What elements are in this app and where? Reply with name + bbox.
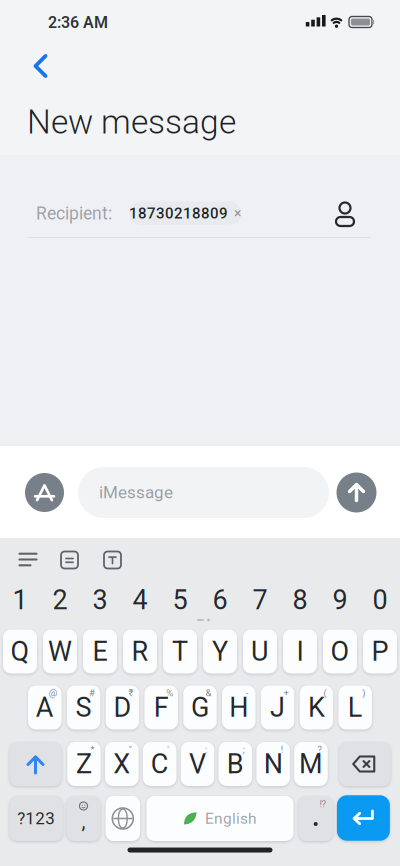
button[interactable]: N: [256, 742, 290, 786]
button[interactable]: 3: [80, 582, 120, 618]
staticText: !: [281, 744, 283, 755]
button[interactable]: R: [123, 629, 157, 673]
button[interactable]: G: [183, 685, 217, 729]
button[interactable]: C: [143, 742, 176, 786]
staticText: New message: [27, 102, 236, 142]
staticText: K: [308, 692, 325, 723]
button[interactable]: [25, 49, 55, 83]
staticText: 0: [372, 584, 387, 616]
button[interactable]: 18730218809: [129, 201, 241, 225]
button[interactable]: Q: [3, 629, 37, 673]
staticText: E: [92, 636, 107, 667]
staticText: ): [362, 687, 365, 698]
button[interactable]: L: [338, 685, 372, 729]
button[interactable]: E: [83, 629, 117, 673]
button[interactable]: English: [146, 796, 293, 841]
staticText: ;: [243, 744, 245, 755]
button[interactable]: [55, 547, 83, 573]
button[interactable]: Y: [203, 629, 237, 673]
button[interactable]: iMessage: [78, 467, 329, 518]
staticText: G: [191, 692, 209, 723]
staticText: S: [76, 692, 92, 723]
staticText: ': [167, 744, 169, 755]
staticText: W: [48, 636, 72, 667]
staticText: L: [348, 692, 363, 723]
button[interactable]: [339, 742, 390, 786]
staticText: 7: [252, 584, 267, 616]
staticText: ,: [81, 810, 85, 833]
button[interactable]: 8: [280, 582, 320, 618]
button[interactable]: S: [67, 685, 100, 729]
staticText: 3: [92, 584, 107, 616]
button[interactable]: 2: [40, 582, 80, 618]
staticText: Z: [76, 748, 92, 780]
button[interactable]: 4: [120, 582, 160, 618]
staticText: I: [296, 636, 303, 667]
staticText: B: [227, 748, 244, 780]
staticText: 1: [12, 584, 27, 616]
staticText: -: [246, 687, 249, 698]
staticText: F: [154, 692, 169, 723]
staticText: ?123: [17, 808, 55, 828]
button[interactable]: ?123: [10, 796, 63, 841]
staticText: 2:36 AM: [48, 13, 108, 32]
button[interactable]: T: [163, 629, 197, 673]
staticText: C: [151, 748, 169, 780]
button[interactable]: [98, 547, 126, 573]
button[interactable]: B: [219, 742, 252, 786]
button[interactable]: X: [105, 742, 139, 786]
button[interactable]: F: [144, 685, 178, 729]
button[interactable]: [105, 796, 140, 841]
staticText: Y: [212, 636, 228, 667]
button[interactable]: [25, 473, 64, 512]
staticText: (: [323, 687, 326, 698]
button[interactable]: [13, 546, 43, 572]
button[interactable]: 1: [0, 582, 40, 618]
staticText: H: [229, 692, 248, 723]
button[interactable]: 6: [200, 582, 240, 618]
staticText: N: [264, 748, 283, 780]
staticText: D: [113, 692, 131, 723]
button[interactable]: ,: [66, 796, 100, 841]
button[interactable]: Z: [67, 742, 101, 786]
button[interactable]: [333, 200, 357, 227]
staticText: Q: [10, 636, 29, 667]
button[interactable]: 9: [320, 582, 360, 618]
staticText: 4: [132, 584, 147, 616]
button[interactable]: J: [261, 685, 294, 729]
button[interactable]: U: [243, 629, 277, 673]
staticText: :: [205, 744, 207, 755]
button[interactable]: K: [300, 685, 333, 729]
button[interactable]: 0: [360, 582, 400, 618]
button[interactable]: 7: [240, 582, 280, 618]
staticText: T: [172, 636, 188, 667]
button[interactable]: O: [323, 629, 357, 673]
staticText: @: [49, 687, 58, 698]
button[interactable]: W: [43, 629, 77, 673]
button[interactable]: H: [222, 685, 256, 729]
staticText: 2: [52, 584, 67, 616]
button[interactable]: 5: [160, 582, 200, 618]
button[interactable]: I: [283, 629, 317, 673]
button[interactable]: V: [181, 742, 214, 786]
staticText: #: [89, 687, 95, 698]
staticText: 6: [212, 584, 227, 616]
button[interactable]: D: [106, 685, 139, 729]
staticText: +: [284, 687, 289, 698]
staticText: *: [90, 744, 94, 755]
staticText: P: [371, 636, 388, 667]
staticText: 8: [292, 584, 307, 616]
staticText: iMessage: [99, 482, 173, 502]
staticText: 18730218809: [129, 204, 228, 222]
staticText: Recipient:: [36, 203, 112, 224]
button[interactable]: !?: [298, 796, 333, 841]
button[interactable]: [336, 472, 376, 512]
button[interactable]: [9, 742, 61, 786]
staticText: 5: [172, 584, 187, 616]
button[interactable]: A: [28, 685, 62, 729]
button[interactable]: P: [363, 629, 397, 673]
staticText: ": [129, 744, 132, 755]
button[interactable]: M: [294, 742, 328, 786]
button[interactable]: [337, 795, 390, 841]
staticText: A: [36, 692, 54, 723]
